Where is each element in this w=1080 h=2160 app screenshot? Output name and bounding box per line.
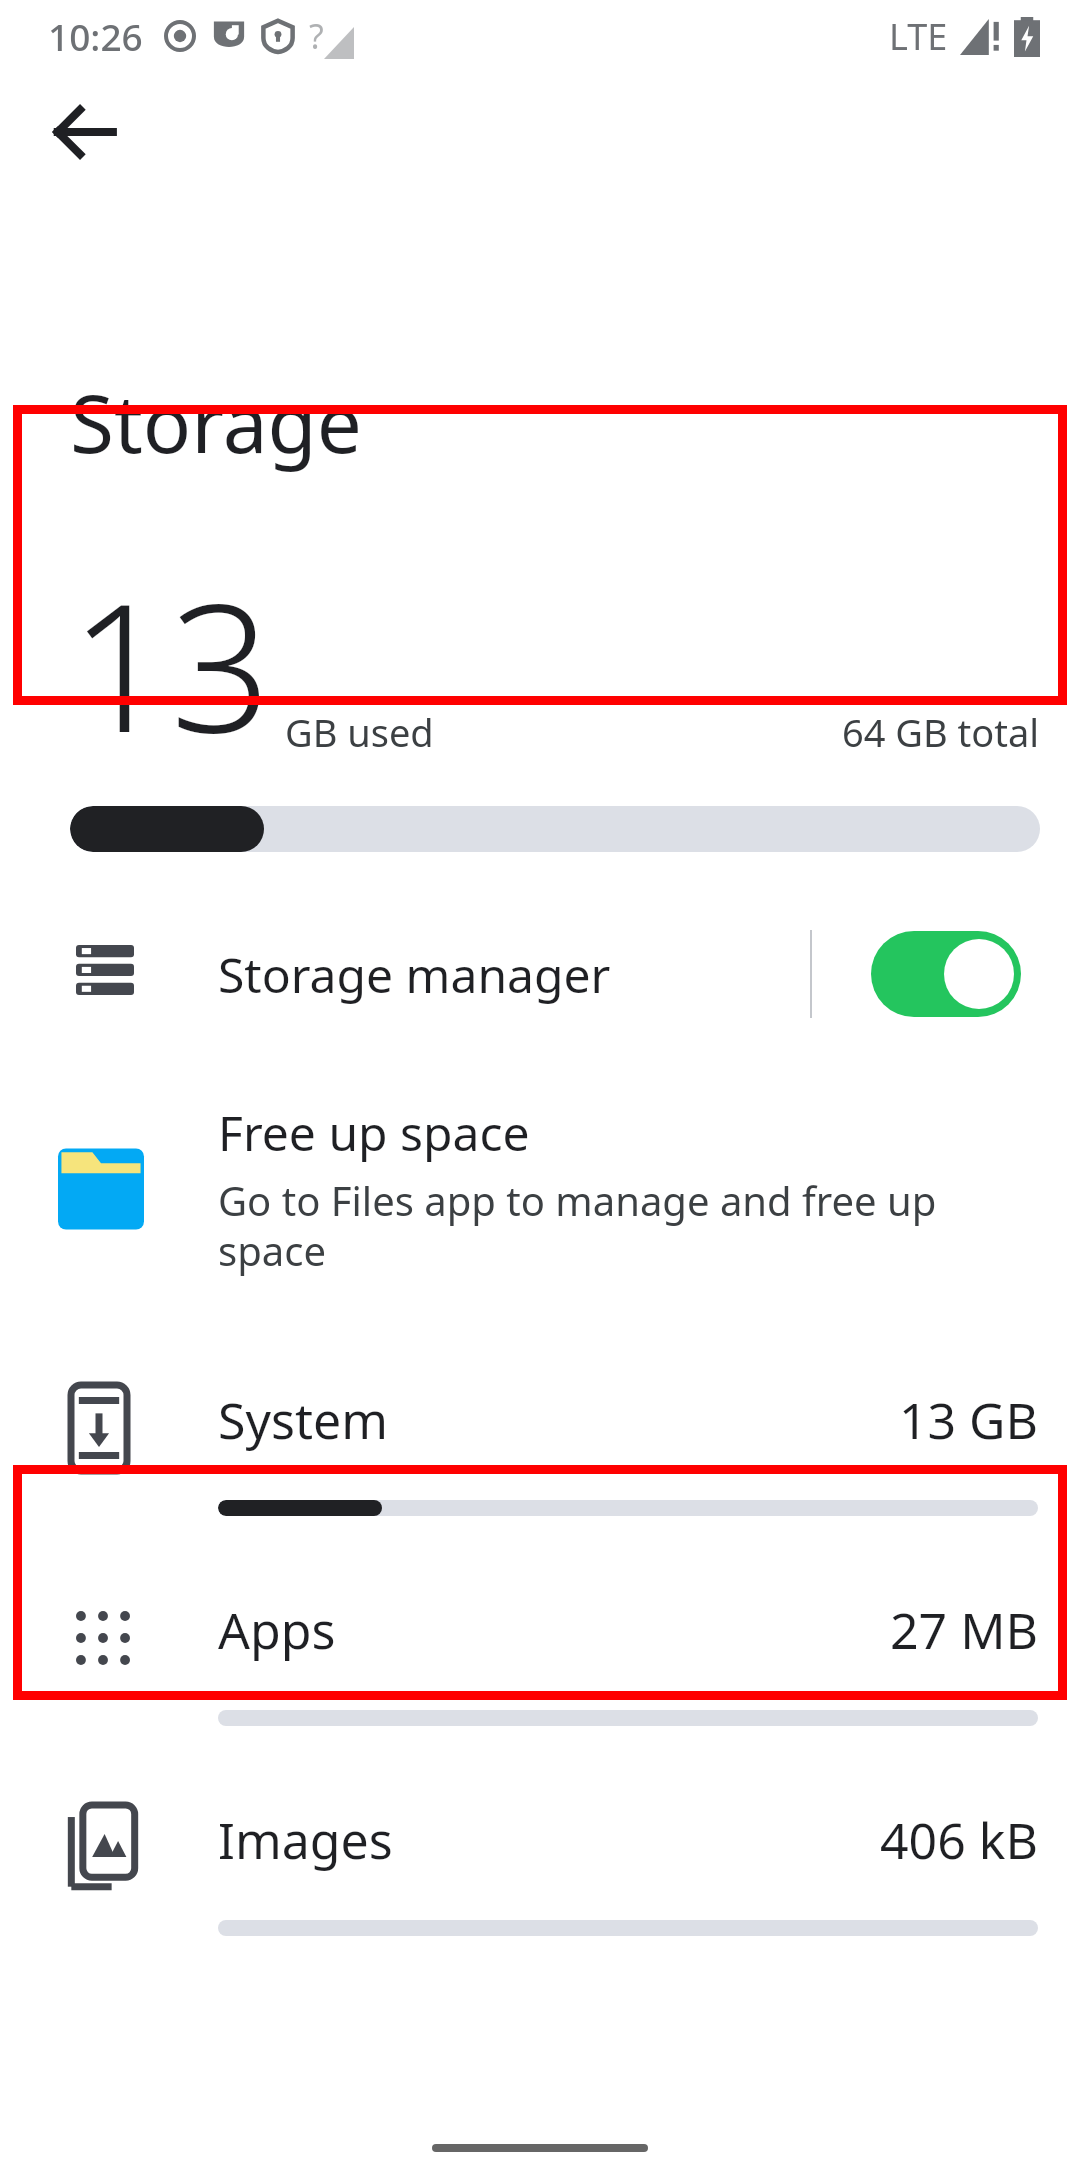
staticText: 406 kB — [880, 1806, 1038, 1874]
staticText: 13 GB — [898, 1386, 1038, 1454]
button[interactable]: Storage manager toggle — [812, 914, 1080, 1034]
button[interactable]: Images — [0, 1768, 1080, 1978]
staticText: Apps — [218, 1596, 336, 1664]
staticText: 27 MB — [889, 1596, 1038, 1664]
staticText: 64 GB total — [842, 706, 1040, 758]
staticText: Images — [218, 1806, 393, 1874]
button[interactable]: System — [0, 1348, 1080, 1558]
staticText: Storage — [70, 367, 362, 476]
button[interactable]: Storage manager — [0, 914, 1080, 1034]
staticText: Go to Files app to manage and free up sp… — [218, 1173, 1020, 1278]
staticText: Free up space — [218, 1100, 530, 1165]
button[interactable]: Back — [30, 77, 140, 187]
button[interactable]: Apps — [0, 1558, 1080, 1768]
staticText: 13 — [70, 544, 271, 784]
staticText: 10:26 — [48, 11, 143, 61]
staticText: GB used — [285, 706, 434, 758]
staticText: ? — [309, 13, 324, 59]
button[interactable]: Free up space — [0, 1100, 1080, 1278]
staticText: System — [218, 1386, 388, 1454]
staticText: LTE — [889, 12, 948, 61]
staticText: Storage manager — [218, 942, 611, 1007]
